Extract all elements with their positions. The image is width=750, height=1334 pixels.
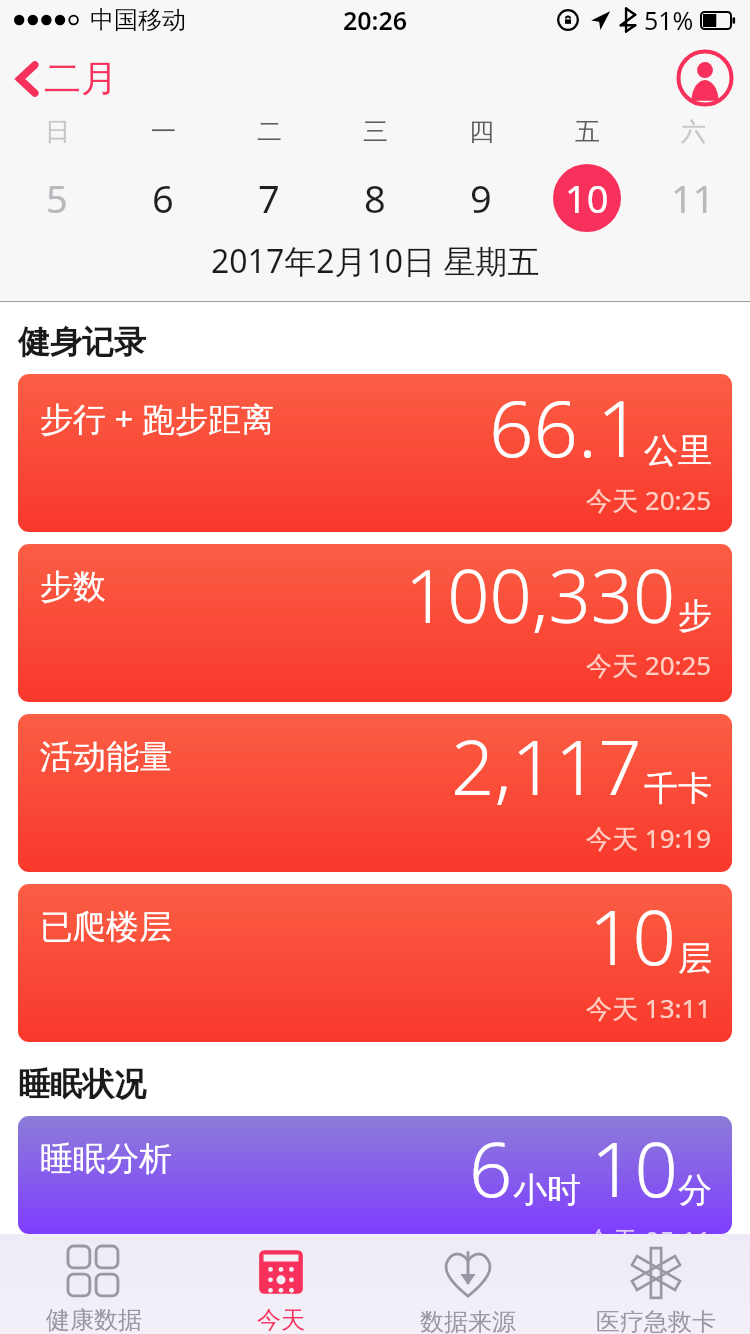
staticText: 7 — [258, 172, 280, 224]
staticText: 9 — [470, 172, 492, 224]
staticText: 活动能量 — [40, 736, 172, 778]
staticText: 五 — [575, 116, 600, 147]
staticText: 四 — [469, 116, 494, 147]
staticText: 今天 20:25 — [586, 647, 712, 683]
staticText: 一 — [151, 116, 176, 147]
button[interactable]: 10 — [534, 161, 640, 235]
button[interactable]: 健康数据 — [0, 1234, 187, 1334]
staticText: 分 — [678, 1169, 712, 1212]
staticText: 10 — [591, 1116, 678, 1220]
staticText: 今天 19:19 — [586, 820, 712, 856]
staticText: 步 — [678, 594, 712, 637]
staticText: 步行 + 跑步距离 — [40, 396, 275, 441]
button[interactable]: 11 — [640, 161, 746, 235]
staticText: 层 — [678, 937, 712, 980]
staticText: 中国移动 — [90, 5, 186, 35]
button[interactable]: 睡眠分析 — [18, 1116, 732, 1234]
staticText: 今天 13:11 — [586, 990, 712, 1026]
staticText: 5 — [46, 172, 68, 224]
staticText: 二月 — [44, 55, 118, 102]
button[interactable]: 7 — [216, 161, 322, 235]
staticText: 今天 05:11 — [586, 1222, 712, 1234]
staticText: 数据来源 — [420, 1307, 516, 1334]
button[interactable]: Profile — [676, 49, 734, 107]
staticText: 步数 — [40, 566, 106, 608]
staticText: 二 — [257, 116, 282, 147]
staticText: 20:26 — [343, 3, 408, 37]
button[interactable]: 9 — [428, 161, 534, 235]
staticText: 健康数据 — [46, 1305, 142, 1334]
button[interactable]: 5 — [4, 161, 110, 235]
staticText: 六 — [681, 116, 706, 147]
staticText: 6 — [469, 1116, 513, 1220]
staticText: 8 — [364, 172, 386, 224]
staticText: 11 — [671, 172, 715, 224]
staticText: 日 — [45, 116, 70, 147]
staticText: 睡眠分析 — [40, 1138, 172, 1180]
staticText: 健身记录 — [18, 322, 146, 362]
button[interactable]: 医疗急救卡 — [562, 1234, 750, 1334]
staticText: 66.1 — [489, 374, 642, 480]
button[interactable]: 6 — [110, 161, 216, 235]
button[interactable]: 步数 — [18, 544, 732, 702]
staticText: 10 — [589, 884, 676, 988]
button[interactable]: 8 — [322, 161, 428, 235]
button[interactable]: 步行 + 跑步距离 — [18, 374, 732, 532]
staticText: 2,117 — [451, 714, 642, 818]
button[interactable]: 活动能量 — [18, 714, 732, 872]
staticText: 千卡 — [644, 767, 712, 810]
button[interactable]: 今天 — [187, 1234, 374, 1334]
staticText: 10 — [565, 172, 609, 224]
staticText: 51% — [644, 3, 694, 37]
staticText: 100,330 — [405, 544, 676, 645]
staticText: 已爬楼层 — [40, 906, 172, 948]
staticText: 小时 — [513, 1169, 581, 1212]
staticText: 今天 — [257, 1305, 305, 1334]
button[interactable]: 已爬楼层 — [18, 884, 732, 1042]
staticText: 6 — [152, 172, 174, 224]
staticText: 公里 — [644, 429, 712, 472]
button[interactable]: 二月 — [0, 49, 128, 108]
staticText: 医疗急救卡 — [596, 1307, 716, 1334]
staticText: 2017年2月10日 星期五 — [211, 239, 540, 283]
staticText: 睡眠状况 — [18, 1064, 146, 1104]
staticText: 三 — [363, 116, 388, 147]
button[interactable]: 数据来源 — [374, 1234, 562, 1334]
staticText: 今天 20:25 — [586, 482, 712, 518]
